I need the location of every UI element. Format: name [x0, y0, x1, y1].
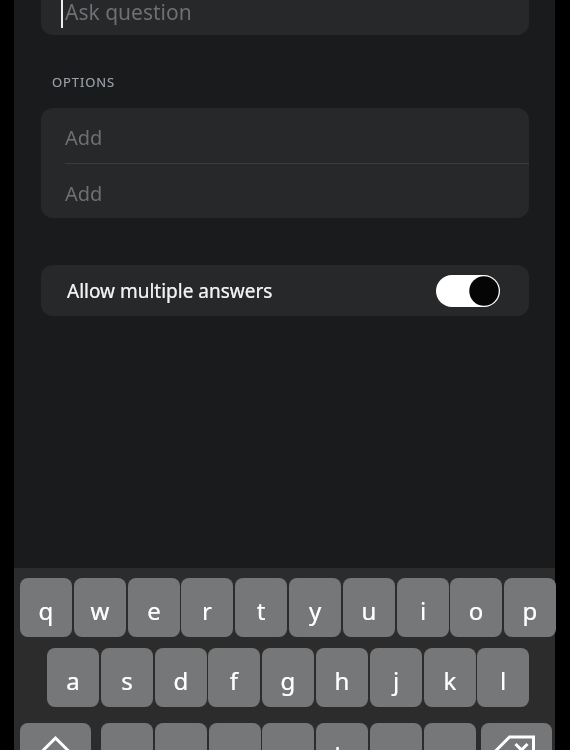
- staticText: b: [316, 739, 368, 750]
- staticText: Add: [65, 180, 103, 207]
- button[interactable]: Backspace: [481, 723, 552, 750]
- staticText: q: [20, 594, 72, 637]
- staticText: d: [155, 664, 207, 707]
- button[interactable]: t: [235, 578, 287, 637]
- staticText: Add: [65, 124, 103, 151]
- staticText: r: [181, 594, 233, 637]
- button[interactable]: c: [209, 723, 261, 750]
- button[interactable]: m: [424, 723, 476, 750]
- button[interactable]: b: [316, 723, 368, 750]
- staticText: f: [208, 664, 260, 707]
- staticText: l: [477, 664, 529, 707]
- button[interactable]: n: [370, 723, 422, 750]
- staticText: g: [262, 664, 314, 707]
- button[interactable]: z: [101, 723, 153, 750]
- staticText: k: [424, 664, 476, 707]
- staticText: t: [235, 594, 287, 637]
- button[interactable]: Add: [41, 108, 529, 163]
- staticText: j: [370, 664, 422, 707]
- button[interactable]: p: [504, 578, 556, 637]
- button[interactable]: i: [397, 578, 449, 637]
- button[interactable]: r: [181, 578, 233, 637]
- button[interactable]: s: [101, 648, 153, 707]
- button[interactable]: g: [262, 648, 314, 707]
- button[interactable]: d: [155, 648, 207, 707]
- button[interactable]: f: [208, 648, 260, 707]
- button[interactable]: v: [262, 723, 314, 750]
- staticText: OPTIONS: [52, 73, 116, 91]
- button[interactable]: e: [128, 578, 180, 637]
- button[interactable]: w: [74, 578, 126, 637]
- staticText: w: [74, 594, 126, 637]
- button[interactable]: h: [316, 648, 368, 707]
- staticText: i: [397, 594, 449, 637]
- staticText: a: [47, 664, 99, 707]
- button[interactable]: x: [155, 723, 207, 750]
- staticText: Allow multiple answers: [67, 278, 273, 304]
- button[interactable]: Allow multiple answers toggle: [436, 275, 508, 307]
- staticText: u: [343, 594, 395, 637]
- staticText: y: [289, 594, 341, 637]
- button[interactable]: u: [343, 578, 395, 637]
- staticText: e: [128, 594, 180, 637]
- staticText: o: [450, 594, 502, 637]
- button[interactable]: Allow multiple answers: [41, 265, 529, 316]
- button[interactable]: j: [370, 648, 422, 707]
- button[interactable]: [41, 0, 529, 35]
- staticText: p: [504, 594, 556, 637]
- button[interactable]: l: [477, 648, 529, 707]
- button[interactable]: q: [20, 578, 72, 637]
- button[interactable]: o: [450, 578, 502, 637]
- staticText: s: [101, 664, 153, 707]
- button[interactable]: k: [424, 648, 476, 707]
- staticText: Ask question: [65, 0, 192, 27]
- button[interactable]: Add: [41, 164, 529, 218]
- button[interactable]: a: [47, 648, 99, 707]
- button[interactable]: y: [289, 578, 341, 637]
- staticText: h: [316, 664, 368, 707]
- button[interactable]: Shift: [20, 723, 91, 750]
